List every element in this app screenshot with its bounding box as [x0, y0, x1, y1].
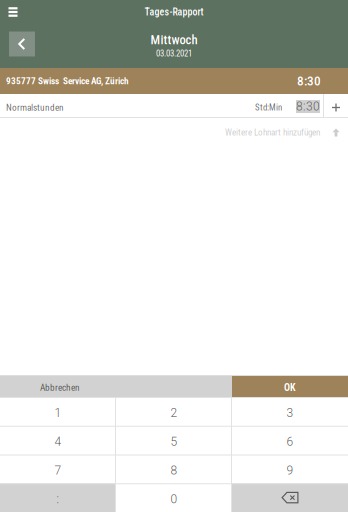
staticText: 03.03.2021	[156, 48, 192, 58]
staticText: 7	[54, 463, 61, 477]
staticText: 3	[286, 406, 293, 420]
button[interactable]: :	[0, 483, 116, 512]
button[interactable]: 8:30	[296, 100, 320, 113]
staticText: 8:30	[297, 73, 321, 89]
staticText: Std:Min	[255, 102, 282, 113]
staticText: OK	[284, 382, 296, 393]
staticText: 6	[286, 435, 293, 449]
button[interactable]: Menu	[0, 0, 26, 24]
button[interactable]: Add hours	[324, 96, 348, 119]
staticText: 4	[54, 435, 61, 449]
staticText: 0	[170, 492, 177, 506]
button[interactable]: OK	[232, 376, 348, 397]
button[interactable]: 4	[0, 426, 116, 455]
button[interactable]: 9	[232, 454, 348, 483]
button[interactable]: Add pay type	[324, 120, 348, 144]
staticText: 935777 Swiss Service AG, Zürich	[6, 75, 129, 86]
staticText: 5	[170, 435, 177, 449]
staticText: 9	[286, 463, 293, 477]
button[interactable]: 2	[116, 397, 232, 426]
button[interactable]: 7	[0, 454, 116, 483]
button[interactable]: 5	[116, 426, 232, 455]
staticText: Abbrechen	[40, 382, 80, 393]
staticText: Weitere Lohnart hinzufügen	[225, 127, 320, 138]
staticText: 1	[54, 406, 61, 420]
button[interactable]: 3	[232, 397, 348, 426]
button[interactable]: 0	[116, 483, 232, 512]
staticText: :	[56, 492, 59, 506]
staticText: 8	[170, 463, 177, 477]
staticText: Normalstunden	[6, 102, 64, 113]
button[interactable]: 6	[232, 426, 348, 455]
button[interactable]: Delete	[232, 483, 348, 512]
button[interactable]: Abbrechen	[0, 376, 232, 397]
staticText: 8:30	[296, 99, 320, 114]
staticText: Tages-Rapport	[144, 6, 203, 18]
staticText: 2	[170, 406, 177, 420]
button[interactable]: 8	[116, 454, 232, 483]
button[interactable]: 1	[0, 397, 116, 426]
button[interactable]: Back	[9, 31, 35, 56]
staticText: Mittwoch	[150, 32, 197, 47]
